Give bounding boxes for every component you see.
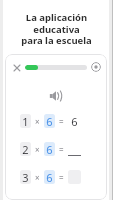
staticText: 2 xyxy=(22,142,29,156)
staticText: × xyxy=(35,116,40,127)
staticText: 6 xyxy=(46,170,53,184)
staticText: 6 xyxy=(46,114,53,128)
button[interactable]: 3 xyxy=(15,170,97,184)
staticText: 6 xyxy=(46,142,53,156)
staticText: 3 xyxy=(22,170,29,184)
staticText: La aplicación educativa para la escuela xyxy=(7,11,106,47)
staticText: = xyxy=(59,116,64,127)
button[interactable]: 1 xyxy=(15,114,97,128)
staticText: 6 xyxy=(71,114,78,128)
button[interactable]: Cerrar xyxy=(11,62,22,73)
staticText: × xyxy=(35,144,40,155)
staticText: = xyxy=(59,144,64,155)
staticText: 1 xyxy=(22,114,29,128)
button[interactable]: 2 xyxy=(15,142,97,156)
staticText: = xyxy=(59,172,64,183)
staticText: × xyxy=(35,172,40,183)
button[interactable]: Escuchar xyxy=(45,85,67,107)
button[interactable]: Ayuda xyxy=(91,62,101,72)
